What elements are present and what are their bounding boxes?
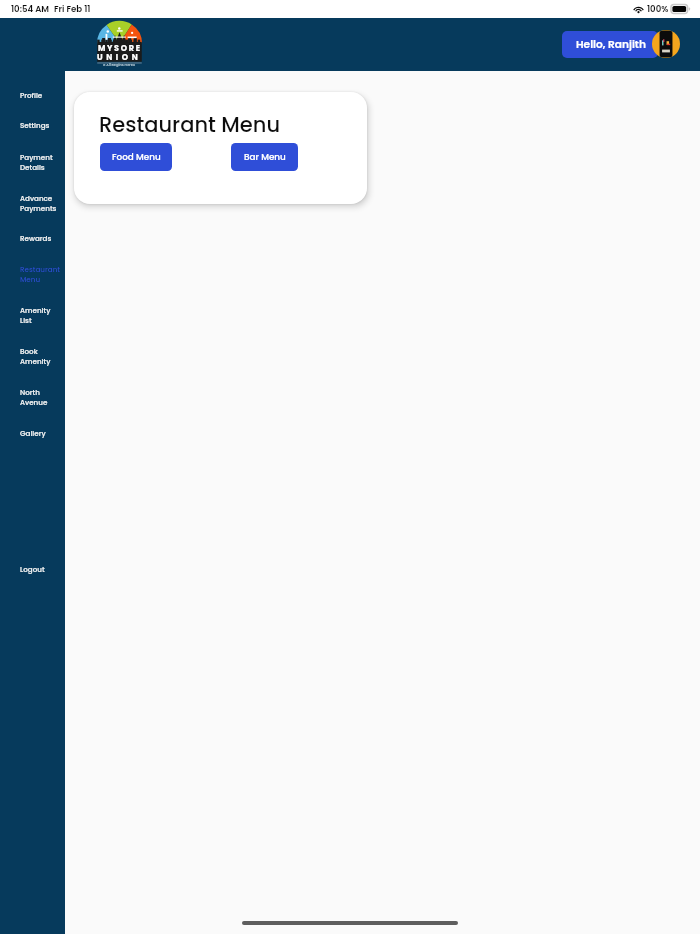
button[interactable]: Profile — [0, 85, 65, 101]
staticText: It All Begins Here!! — [103, 62, 136, 67]
staticText: UNION — [97, 52, 142, 63]
staticText: Restaurant — [20, 264, 60, 274]
staticText: Menu — [20, 274, 41, 284]
staticText: Restaurant Menu — [99, 110, 281, 139]
button[interactable]: Amenity — [0, 300, 65, 326]
button[interactable]: Payment — [0, 147, 65, 173]
button[interactable]: Food Menu — [100, 143, 172, 171]
staticText: Book — [20, 346, 38, 356]
staticText: Amenity — [20, 356, 51, 366]
staticText: Hello, Ranjith — [576, 37, 646, 52]
staticText: Food Menu — [112, 151, 161, 163]
staticText: Payment — [20, 152, 53, 162]
staticText: North — [20, 387, 40, 397]
staticText: Gallery — [20, 428, 46, 438]
button[interactable]: Logout — [0, 559, 65, 576]
staticText: Bar Menu — [244, 151, 286, 163]
staticText: 10:54 AM — [11, 3, 50, 15]
button[interactable]: Profile photo — [652, 30, 680, 58]
button[interactable]: Restaurant — [0, 259, 65, 285]
staticText: Settings — [20, 120, 50, 130]
staticText: 100% — [647, 3, 669, 15]
staticText: List — [20, 315, 32, 325]
button[interactable]: Rewards — [0, 228, 65, 244]
staticText: Details — [20, 162, 45, 172]
staticText: Logout — [20, 564, 45, 574]
button[interactable]: Advance — [0, 188, 65, 214]
staticText: MYSORE — [98, 43, 142, 54]
staticText: Fri Feb 11 — [54, 3, 91, 15]
button[interactable]: Settings — [0, 115, 65, 131]
button[interactable]: Bar Menu — [231, 143, 298, 171]
staticText: Payments — [20, 203, 57, 213]
staticText: Rewards — [20, 233, 52, 243]
button[interactable]: Gallery — [0, 423, 65, 439]
staticText: Amenity — [20, 305, 51, 315]
staticText: Profile — [20, 90, 43, 100]
button[interactable]: Book — [0, 341, 65, 367]
staticText: Avenue — [20, 397, 48, 407]
button[interactable]: Hello, Ranjith — [562, 31, 658, 58]
staticText: Advance — [20, 193, 53, 203]
button[interactable]: North — [0, 382, 65, 408]
